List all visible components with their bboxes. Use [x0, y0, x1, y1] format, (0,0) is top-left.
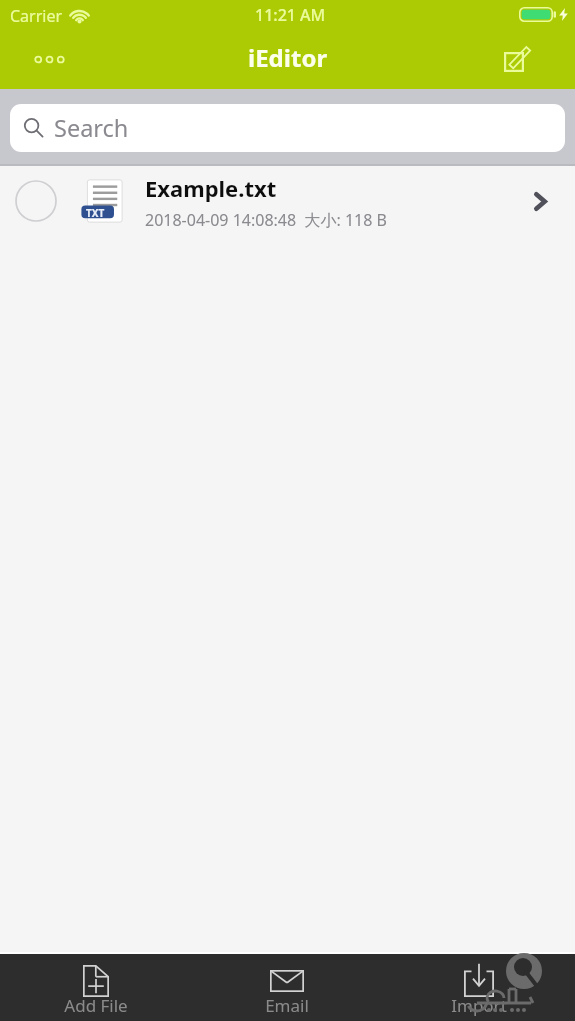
staticText: Search	[54, 112, 129, 144]
staticText: 11:21 AM	[255, 4, 326, 26]
staticText: Email	[265, 994, 309, 1017]
staticText: Add File	[64, 994, 128, 1017]
staticText: 2018-04-09 14:08:48 大小: 118 B	[145, 209, 387, 231]
button[interactable]: TXT	[0, 166, 575, 236]
button[interactable]: More options	[26, 36, 72, 82]
staticText: TXT	[86, 206, 105, 220]
button[interactable]: Add File	[0, 954, 191, 1021]
button[interactable]: Search	[10, 104, 565, 152]
button[interactable]: New document	[493, 36, 539, 82]
staticText: iEditor	[248, 41, 328, 74]
staticText: Import	[451, 994, 507, 1017]
staticText: Carrier	[10, 5, 63, 27]
staticText: Example.txt	[145, 173, 277, 203]
button[interactable]: Import	[383, 954, 575, 1021]
button[interactable]: Email	[191, 954, 383, 1021]
